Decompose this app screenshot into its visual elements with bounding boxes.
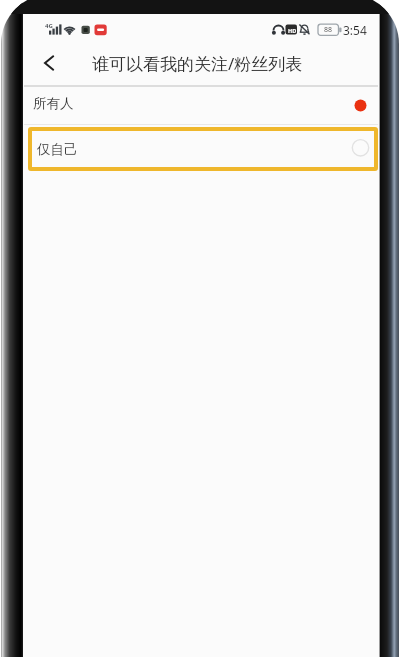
staticText: 88	[324, 25, 333, 35]
staticText: 谁可以看我的关注/粉丝列表	[92, 52, 303, 75]
button[interactable]: 所有人	[24, 85, 378, 121]
button[interactable]: 仅自己	[28, 127, 378, 171]
staticText: 所有人	[33, 95, 74, 112]
button[interactable]	[36, 50, 62, 76]
staticText: 3:54	[343, 22, 367, 38]
staticText: HD	[288, 27, 297, 34]
staticText: 仅自己	[37, 141, 78, 158]
staticText: 4G	[45, 22, 53, 30]
